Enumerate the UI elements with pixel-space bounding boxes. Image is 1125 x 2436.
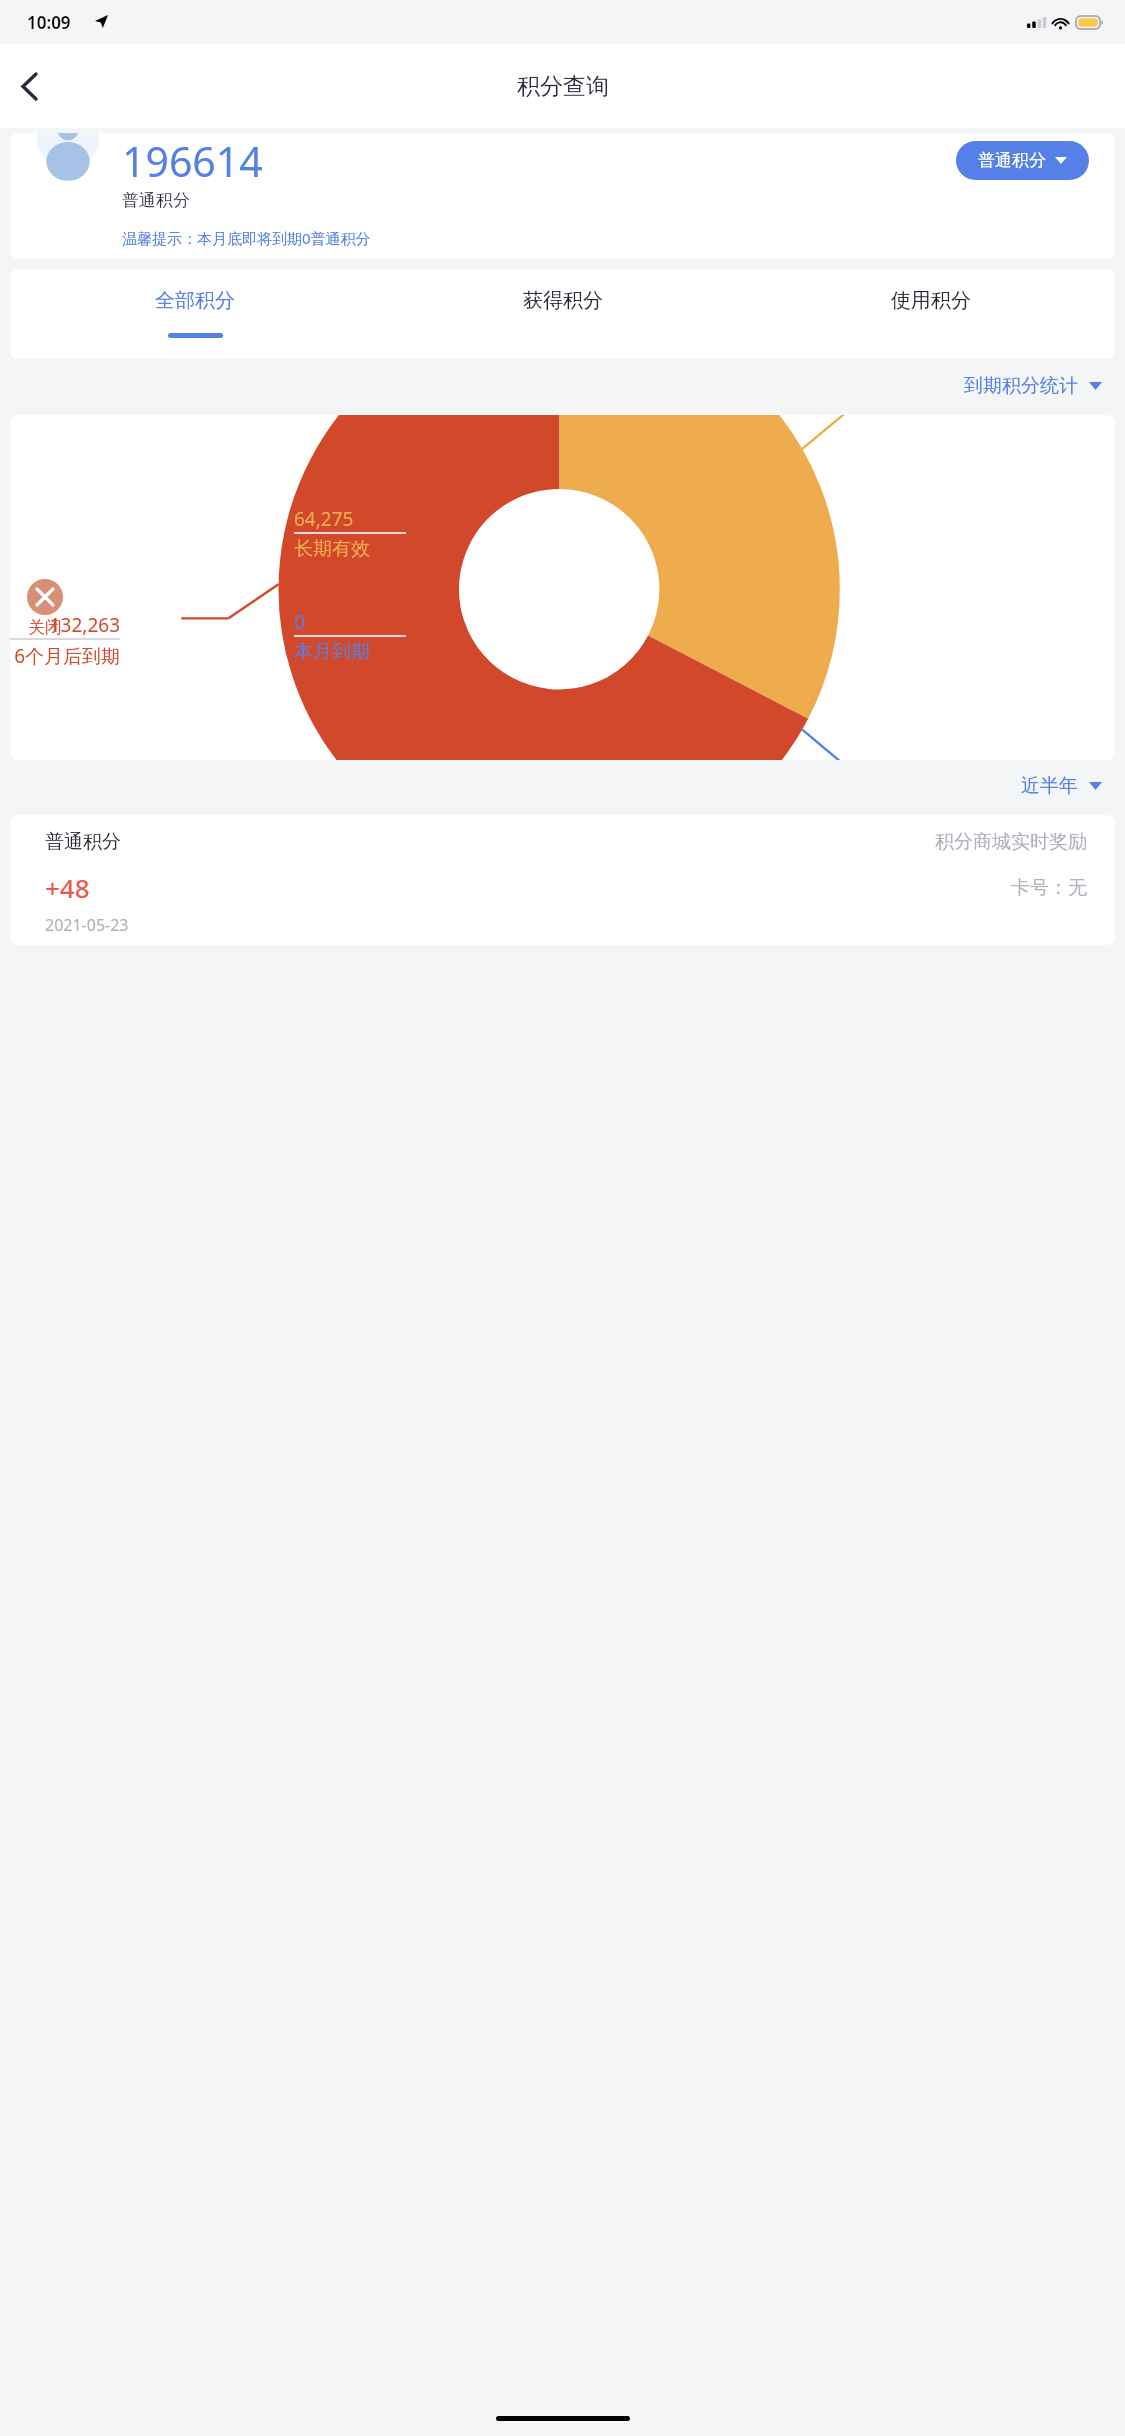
- button[interactable]: Close: [27, 579, 63, 615]
- staticText: 10:09: [27, 11, 71, 34]
- staticText: 到期积分统计: [964, 374, 1078, 398]
- staticText: 长期有效: [294, 537, 406, 561]
- staticText: 64,275: [294, 506, 406, 532]
- button[interactable]: Back: [0, 57, 58, 115]
- staticText: 使用积分: [891, 288, 971, 313]
- staticText: 获得积分: [523, 288, 603, 313]
- staticText: 0: [294, 609, 406, 635]
- staticText: 6个月后到期: [10, 643, 120, 669]
- staticText: 132,263: [10, 612, 120, 638]
- button[interactable]: 使用积分: [747, 269, 1115, 359]
- button[interactable]: 全部积分: [10, 269, 379, 359]
- staticText: 普通积分: [122, 190, 190, 211]
- staticText: 普通积分: [45, 830, 121, 854]
- staticText: 2021-05-23: [45, 914, 129, 936]
- staticText: +48: [45, 870, 90, 905]
- button[interactable]: 普通积分: [956, 141, 1089, 180]
- staticText: 普通积分: [978, 150, 1046, 171]
- staticText: 196614: [122, 133, 263, 189]
- staticText: 本月到期: [294, 640, 406, 664]
- staticText: 温馨提示：本月底即将到期0普通积分: [122, 228, 371, 248]
- button[interactable]: 获得积分: [379, 269, 747, 359]
- staticText: 全部积分: [155, 288, 235, 313]
- staticText: 积分查询: [517, 72, 609, 101]
- staticText: 积分商城实时奖励: [935, 830, 1087, 854]
- button[interactable]: 普通积分: [10, 815, 1115, 945]
- staticText: 近半年: [1021, 774, 1078, 798]
- staticText: 卡号：无: [1011, 876, 1087, 900]
- button[interactable]: 近半年: [1016, 769, 1107, 803]
- button[interactable]: 到期积分统计: [959, 369, 1107, 403]
- staticText: 关闭: [28, 617, 62, 638]
